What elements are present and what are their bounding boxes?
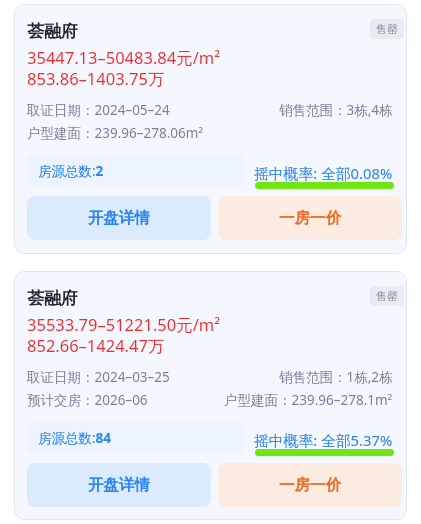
staticText: 荟融府 <box>27 288 78 309</box>
staticText: 开盘详情 <box>88 208 150 228</box>
button[interactable]: 一房一价 <box>218 463 402 507</box>
staticText: 35533.79–51221.50元/m² <box>27 313 221 336</box>
button[interactable]: 一房一价 <box>218 196 402 240</box>
staticText: 一房一价 <box>279 475 341 495</box>
staticText: 售罄 <box>376 22 398 36</box>
button[interactable]: 房源总数:84 <box>27 422 244 453</box>
staticText: 852.66–1424.47万 <box>27 334 165 357</box>
staticText: 取证日期：2024–05–24 <box>27 101 170 119</box>
button[interactable]: 售罄 <box>376 22 398 36</box>
staticText: 房源总数:84 <box>38 429 112 447</box>
staticText: 销售范围：1栋,2栋 <box>279 368 393 386</box>
staticText: 销售范围：3栋,4栋 <box>279 101 393 119</box>
staticText: 预计交房：2026–06 <box>27 391 148 409</box>
button[interactable]: 房源总数:2 <box>27 155 244 186</box>
staticText: 房源总数:2 <box>38 162 104 180</box>
button[interactable]: 开盘详情 <box>27 196 211 240</box>
button[interactable]: 售罄 <box>376 289 398 303</box>
staticText: 853.86–1403.75万 <box>27 67 165 90</box>
staticText: 摇中概率: 全部0.08% <box>254 163 393 183</box>
staticText: 户型建面：239.96–278.06m² <box>27 124 204 142</box>
staticText: 售罄 <box>376 289 398 303</box>
staticText: 摇中概率: 全部5.37% <box>254 430 393 450</box>
button[interactable]: 荟融府 <box>14 4 407 254</box>
staticText: 户型建面：239.96–278.1m² <box>224 391 393 409</box>
staticText: 一房一价 <box>279 208 341 228</box>
staticText: 取证日期：2024–03–25 <box>27 368 170 386</box>
staticText: 35447.13–50483.84元/m² <box>27 46 221 69</box>
staticText: 荟融府 <box>27 21 78 42</box>
staticText: 开盘详情 <box>88 475 150 495</box>
button[interactable]: 荟融府 <box>14 271 407 520</box>
button[interactable]: 开盘详情 <box>27 463 211 507</box>
